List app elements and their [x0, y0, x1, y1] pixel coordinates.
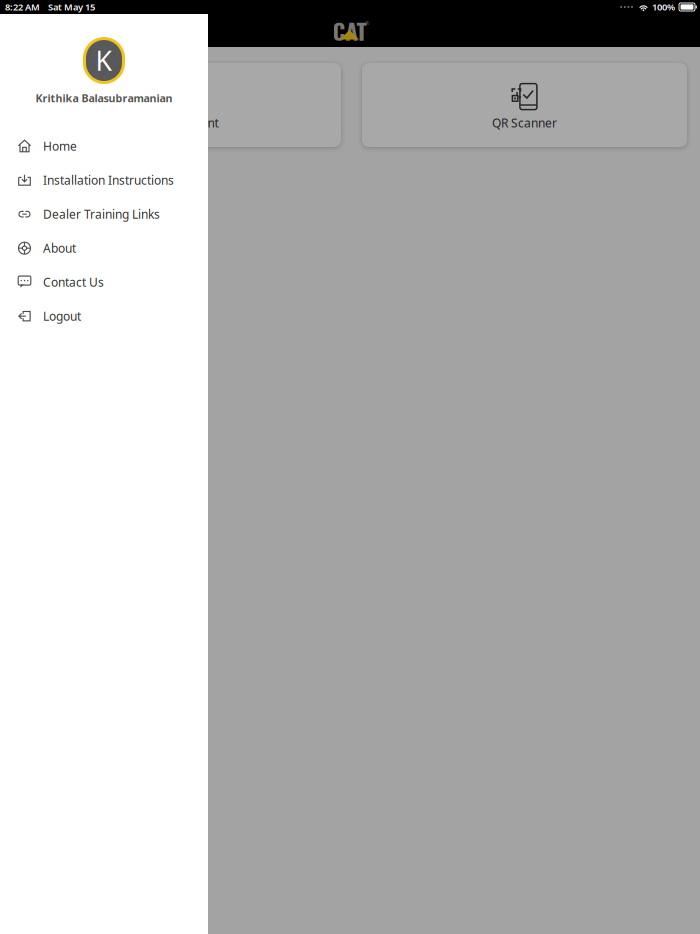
button[interactable]: Contact Us [0, 265, 208, 299]
staticText: Dealer Training Links [43, 206, 160, 222]
staticText: K [95, 43, 112, 78]
staticText: My Equipment [138, 115, 218, 131]
staticText: Installation Instructions [43, 172, 174, 188]
staticText: Home [43, 138, 77, 154]
staticText: ® [365, 20, 369, 27]
staticText: Sat May 15 [48, 1, 95, 13]
button[interactable]: Home [0, 129, 208, 163]
staticText: Contact Us [43, 274, 104, 290]
staticText: 8:22 AM [5, 1, 40, 13]
staticText: 100% [652, 1, 675, 13]
staticText: Krithika Balasubramanian [35, 91, 172, 105]
button[interactable]: My Equipment [16, 63, 341, 147]
button[interactable]: QR Scanner [362, 63, 687, 147]
staticText: Logout [43, 308, 81, 324]
button[interactable]: About [0, 231, 208, 265]
button[interactable]: Dealer Training Links [0, 197, 208, 231]
button[interactable]: Installation Instructions [0, 163, 208, 197]
staticText: QR Scanner [492, 115, 557, 131]
button[interactable]: Logout [0, 299, 208, 333]
staticText: CAT [332, 14, 366, 47]
staticText: About [43, 240, 76, 256]
